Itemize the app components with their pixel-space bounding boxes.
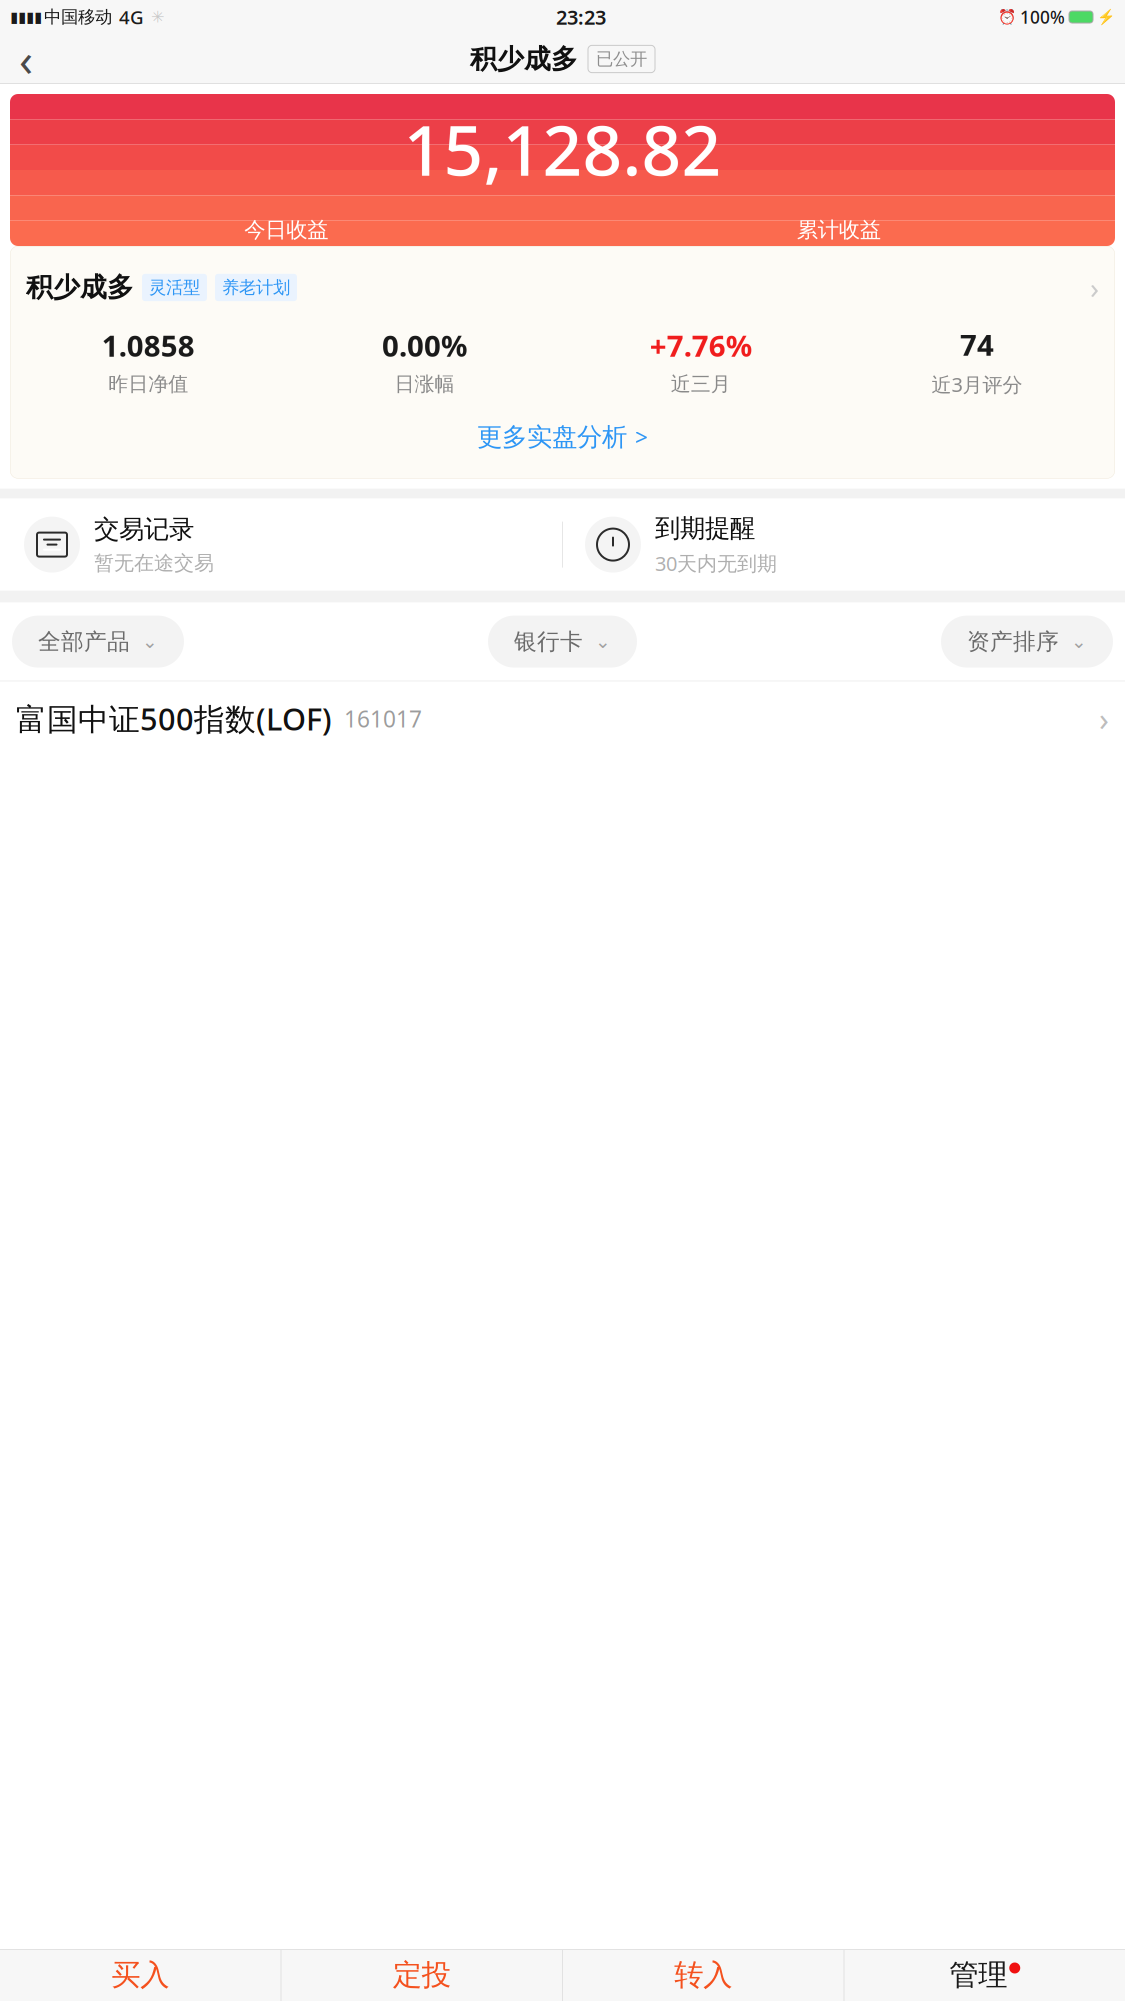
staticText: ⚡: [1097, 9, 1115, 25]
button[interactable]: 资产排序: [941, 616, 1113, 668]
staticText: ▮▮▮▮: [10, 9, 42, 25]
staticText: 养老计划: [222, 277, 290, 298]
staticText: ‹: [19, 29, 33, 89]
staticText: 近3月评分: [931, 371, 1022, 397]
staticText: 100%: [1020, 5, 1065, 28]
button[interactable]: 转入: [563, 1949, 843, 2001]
staticText: 30天内无到期: [655, 550, 777, 576]
button[interactable]: 定投: [281, 1949, 562, 2001]
staticText: 资产排序: [967, 628, 1059, 655]
staticText: 到期提醒: [655, 513, 755, 544]
button[interactable]: 更多实盘分析: [10, 397, 1115, 479]
staticText: 管理: [949, 1957, 1007, 1993]
staticText: ⌄: [142, 631, 158, 652]
staticText: 更多实盘分析: [477, 421, 627, 453]
button[interactable]: 到期提醒: [563, 513, 1125, 576]
staticText: 积少成多: [470, 43, 578, 75]
staticText: 74: [960, 325, 994, 364]
staticText: 近三月: [671, 372, 731, 396]
staticText: ›: [1090, 268, 1099, 307]
staticText: 1.0858: [102, 326, 195, 365]
staticText: 161017: [344, 703, 422, 734]
button[interactable]: 银行卡: [488, 616, 637, 668]
button[interactable]: 全部产品: [12, 616, 184, 668]
staticText: 资产（元）: [510, 63, 615, 89]
staticText: +7.76%: [650, 326, 752, 365]
staticText: 积少成多: [26, 271, 134, 304]
staticText: 富国中证500指数(LOF): [16, 698, 332, 739]
button[interactable]: 买入: [0, 1949, 280, 2001]
staticText: 买入: [111, 1957, 169, 1993]
staticText: ›: [1099, 697, 1109, 740]
staticText: 4G: [114, 5, 144, 29]
staticText: 交易记录: [94, 514, 194, 545]
staticText: 暂无在途交易: [94, 551, 214, 575]
button[interactable]: 富国中证500指数(LOF): [0, 682, 1125, 756]
staticText: 全部产品: [38, 628, 130, 655]
staticText: ⌄: [1071, 631, 1087, 652]
button[interactable]: Back: [0, 37, 52, 81]
staticText: 定投: [393, 1957, 451, 1993]
staticText: 累计收益: [797, 217, 881, 243]
staticText: 日涨幅: [394, 372, 454, 396]
staticText: ✳: [146, 8, 164, 26]
staticText: 23:23: [556, 4, 606, 30]
staticText: 15,128.82: [403, 103, 721, 195]
staticText: 灵活型: [149, 277, 200, 298]
staticText: 今日收益: [244, 217, 328, 243]
staticText: 昨日净值: [108, 372, 188, 396]
button[interactable]: 管理: [844, 1949, 1125, 2001]
staticText: 0.00%: [382, 326, 467, 365]
button[interactable]: 积少成多: [10, 246, 1115, 307]
staticText: +125.45: [225, 251, 348, 295]
staticText: 已公开: [596, 48, 647, 70]
button[interactable]: 交易记录: [0, 514, 562, 575]
staticText: ⌄: [595, 631, 611, 652]
staticText: 中国移动: [44, 6, 112, 28]
staticText: 转入: [674, 1957, 732, 1993]
staticText: ⏰: [998, 9, 1016, 25]
staticText: >: [635, 422, 648, 452]
staticText: 银行卡: [514, 628, 583, 655]
